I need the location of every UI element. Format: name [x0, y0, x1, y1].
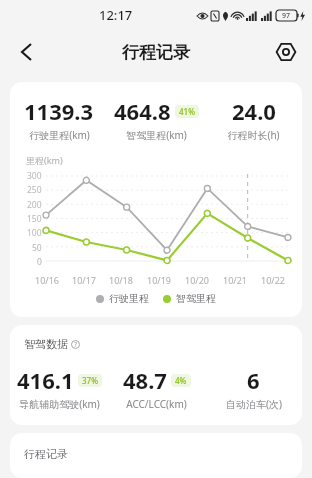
staticText: ACC/LCC(km) — [126, 397, 187, 411]
staticText: 行程时长(h) — [227, 128, 280, 142]
staticText: 10/21 — [223, 274, 247, 286]
button[interactable]: Info — [70, 339, 81, 350]
staticText: 10/19 — [147, 274, 171, 286]
staticText: 1139.3 — [24, 96, 94, 126]
staticText: 行驶里程(km) — [29, 128, 90, 142]
staticText: 行驶里程 — [109, 292, 149, 305]
button[interactable]: Settings — [268, 34, 304, 70]
staticText: 12:17 — [99, 6, 133, 24]
staticText: 行程记录 — [24, 447, 68, 461]
staticText: 200 — [27, 199, 42, 211]
staticText: 智驾里程 — [176, 292, 216, 305]
staticText: 导航辅助驾驶(km) — [19, 397, 100, 411]
staticText: 300 — [27, 170, 42, 182]
staticText: 10/20 — [185, 274, 209, 286]
staticText: 464.8 — [114, 96, 171, 126]
staticText: 50 — [32, 242, 42, 254]
staticText: 0 — [37, 256, 42, 268]
staticText: 10/22 — [261, 274, 285, 286]
staticText: 6 — [247, 365, 260, 395]
staticText: 智驾里程(km) — [126, 128, 187, 142]
staticText: 10/16 — [35, 274, 59, 286]
staticText: 10/17 — [72, 274, 96, 286]
staticText: 100 — [27, 227, 42, 239]
staticText: 416.1 — [17, 365, 74, 395]
button[interactable]: Back — [8, 34, 44, 70]
staticText: 10/18 — [109, 274, 133, 286]
staticText: 4% — [175, 375, 187, 386]
staticText: 智驾数据 — [24, 337, 68, 351]
staticText: 行程记录 — [122, 42, 190, 63]
staticText: 自动泊车(次) — [226, 397, 282, 411]
staticText: 里程(km) — [26, 154, 63, 166]
staticText: 250 — [27, 184, 42, 196]
staticText: 37% — [82, 375, 98, 386]
staticText: ? — [74, 340, 78, 350]
staticText: 41% — [179, 106, 195, 117]
staticText: 150 — [27, 213, 42, 225]
staticText: 48.7 — [123, 365, 167, 395]
staticText: 97 — [282, 11, 291, 21]
staticText: 24.0 — [232, 96, 276, 126]
